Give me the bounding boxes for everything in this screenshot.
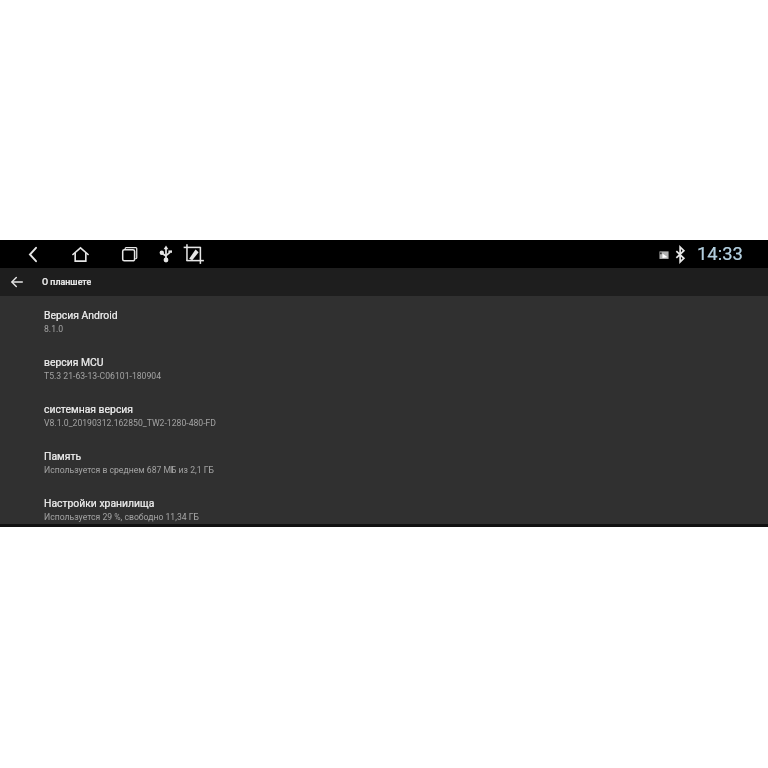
button[interactable]: Настройки хранилища (0, 484, 768, 527)
staticText: Настройки хранилища (44, 497, 155, 509)
other: Bluetooth (674, 245, 687, 264)
staticText: Память (44, 450, 82, 462)
button[interactable]: Home (71, 245, 90, 264)
staticText: Используется в среднем 687 МБ из 2,1 ГБ (44, 465, 214, 475)
staticText: системная версия (44, 403, 134, 415)
staticText: 14:33 (697, 243, 743, 265)
button[interactable]: Screenshot (183, 243, 205, 265)
staticText: О планшете (42, 277, 92, 287)
staticText: Версия Android (44, 309, 118, 321)
staticText: 8.1.0 (44, 324, 64, 334)
button[interactable]: Версия Android (0, 296, 768, 343)
button[interactable]: версия MCU (0, 343, 768, 390)
button[interactable]: USB (156, 244, 176, 264)
button[interactable]: Recents (120, 245, 138, 263)
button[interactable]: системная версия (0, 390, 768, 437)
staticText: Используется 29 %, свободно 11,34 ГБ (44, 512, 200, 522)
staticText: V8.1.0_20190312.162850_TW2-1280-480-FD (44, 418, 217, 428)
button[interactable]: Память (0, 437, 768, 484)
staticText: T5.3 21-63-13-C06101-180904 (44, 371, 162, 381)
staticText: версия MCU (44, 356, 104, 368)
other: Cast (657, 248, 670, 261)
button[interactable]: Navigate up (10, 275, 24, 289)
button[interactable]: Back (23, 244, 44, 265)
